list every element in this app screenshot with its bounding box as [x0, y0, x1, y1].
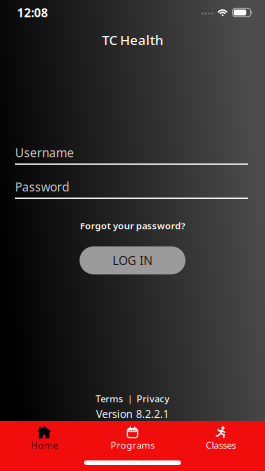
staticText: TC Health [102, 31, 163, 49]
button[interactable]: Terms [95, 392, 123, 405]
staticText: Password [15, 179, 69, 195]
button[interactable]: Privacy [136, 392, 169, 405]
staticText: Classes [206, 439, 236, 451]
staticText: Forgot your password? [80, 219, 185, 232]
staticText: Username [15, 145, 74, 161]
button[interactable]: Forgot your password? [80, 219, 185, 232]
staticText: Version 8.2.2.1 [96, 407, 169, 421]
button[interactable]: Home [0, 421, 88, 471]
button[interactable]: Classes [177, 421, 265, 471]
button[interactable]: Password [0, 179, 265, 199]
staticText: Terms [95, 392, 123, 405]
staticText: LOG IN [112, 252, 152, 268]
button[interactable]: Username [0, 145, 265, 165]
button[interactable]: Programs [88, 421, 177, 471]
staticText: | [127, 392, 132, 405]
staticText: 12:08 [17, 4, 48, 20]
staticText: Home [31, 439, 58, 451]
staticText: Programs [110, 439, 154, 451]
staticText: Privacy [136, 392, 169, 405]
button[interactable]: LOG IN [79, 246, 185, 274]
